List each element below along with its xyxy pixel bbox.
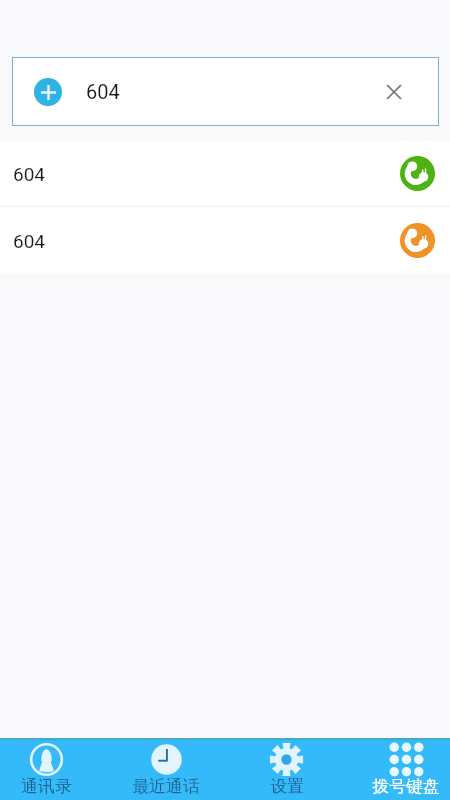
button[interactable]: 通讯录 [0,738,104,800]
button[interactable]: 设置 [228,738,344,800]
button[interactable]: Clear [373,71,415,113]
button[interactable]: 最近通话 [108,738,224,800]
staticText: 拨号键盘 [372,776,440,797]
staticText: 604 [13,230,46,252]
staticText: 604 [13,163,46,185]
button[interactable]: 拨号键盘 [348,738,450,800]
button[interactable]: 604 [0,141,450,206]
button[interactable]: Call 604 [400,223,435,258]
staticText: 最近通话 [132,776,200,797]
staticText: 通讯录 [21,776,72,797]
staticText: 设置 [270,776,304,797]
button[interactable]: Call 604 [400,156,435,191]
button[interactable]: Add contact [34,78,62,106]
button[interactable]: Add contact [12,57,439,126]
staticText: 604 [86,80,120,103]
button[interactable]: 604 [0,207,450,274]
